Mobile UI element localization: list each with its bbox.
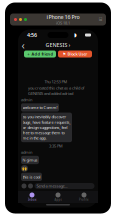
staticText: iPhone 16 Pro bbox=[46, 13, 79, 20]
button[interactable]: Apps bbox=[45, 191, 71, 203]
staticText: 3:35 PM bbox=[49, 143, 63, 148]
staticText: 🙌 bbox=[22, 166, 27, 171]
staticText: Inbox bbox=[28, 198, 36, 201]
staticText: Apps bbox=[54, 198, 61, 201]
staticText: Thu 12:53 PM bbox=[44, 79, 67, 84]
staticText: you created this chat as a child of GENE… bbox=[28, 85, 84, 96]
staticText: admin bbox=[21, 149, 32, 155]
staticText: ＋ Add friend bbox=[26, 51, 53, 57]
staticText: iOS 18.1 bbox=[56, 20, 70, 26]
button[interactable]: ＋ Add friend bbox=[24, 50, 56, 57]
staticText: 4:56 bbox=[27, 31, 37, 39]
staticText: admin bbox=[21, 97, 32, 102]
button[interactable]: Profile bbox=[71, 191, 97, 203]
staticText: ⚑ Block User bbox=[62, 51, 87, 57]
button[interactable]: ⚑ Block User bbox=[58, 50, 92, 57]
staticText: Send a message... bbox=[36, 183, 67, 189]
staticText: hi gimus bbox=[22, 157, 37, 163]
button[interactable]: Back bbox=[18, 40, 28, 49]
staticText: this is cool bbox=[22, 174, 40, 179]
button[interactable]: Inbox bbox=[19, 191, 45, 203]
staticText: Profile bbox=[79, 198, 89, 201]
staticText: ‹ bbox=[21, 38, 24, 52]
staticText: welcome to Comm! bbox=[22, 105, 57, 110]
staticText: GENESIS › bbox=[45, 41, 70, 49]
staticText: ◗ bbox=[74, 32, 77, 38]
staticText: as you inevitably discover bugs, have fe… bbox=[22, 114, 70, 141]
staticText: ⌸ bbox=[99, 17, 102, 22]
